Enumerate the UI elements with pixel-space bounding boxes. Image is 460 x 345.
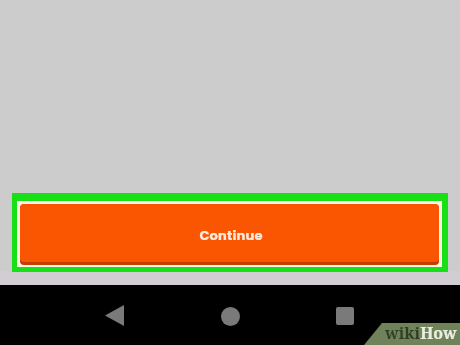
staticText: Continue: [199, 226, 263, 244]
button[interactable]: Back: [95, 296, 133, 334]
button[interactable]: Continue: [20, 204, 439, 265]
button[interactable]: Recent apps: [326, 297, 364, 335]
staticText: wikiHow: [385, 322, 457, 344]
button[interactable]: Home: [211, 297, 249, 335]
